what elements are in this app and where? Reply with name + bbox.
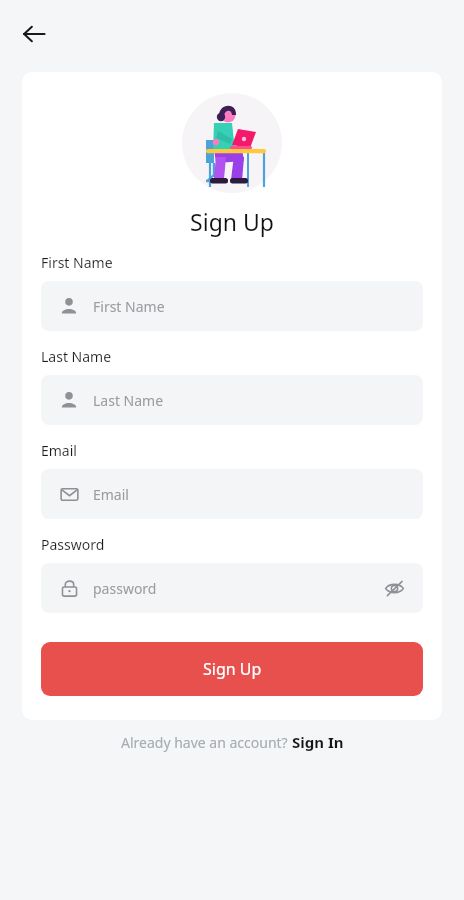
staticText: Sign Up [22, 206, 442, 237]
staticText: Already have an account? [121, 733, 292, 752]
button[interactable]: Last Name [41, 375, 423, 425]
button[interactable]: Sign In [292, 732, 344, 752]
button[interactable]: First Name [41, 281, 423, 331]
staticText: Email [93, 485, 129, 504]
button[interactable]: password [41, 563, 423, 613]
button[interactable]: Back [12, 12, 56, 56]
button[interactable]: Email [41, 469, 423, 519]
staticText: First Name [93, 297, 165, 316]
staticText: Last Name [93, 391, 164, 410]
staticText: Password [41, 535, 105, 554]
staticText: Email [41, 441, 77, 460]
staticText: Sign Up [203, 658, 262, 680]
button[interactable]: Show password [381, 575, 407, 601]
staticText: Last Name [41, 347, 112, 366]
staticText: password [93, 579, 157, 598]
button[interactable]: Sign Up [41, 642, 423, 696]
staticText: First Name [41, 253, 113, 272]
staticText: Sign In [292, 732, 344, 752]
